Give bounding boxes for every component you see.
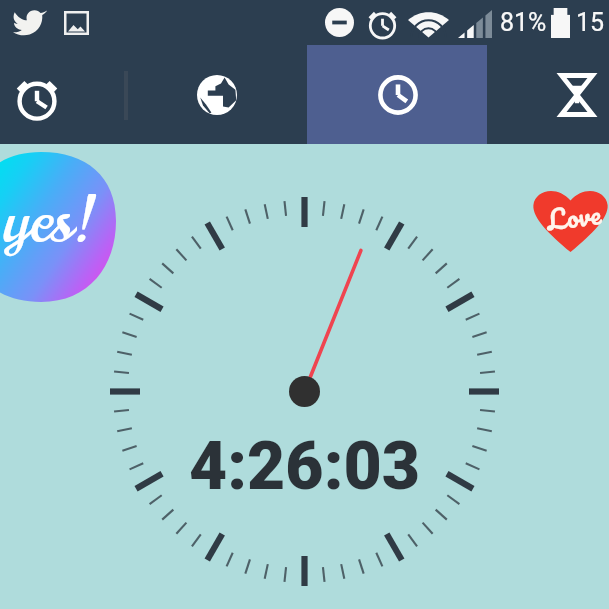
button[interactable]: Timer	[487, 45, 609, 144]
button[interactable]: World clock	[127, 45, 307, 144]
staticText: Love	[544, 190, 603, 243]
staticText: yes!	[4, 177, 92, 266]
button[interactable]: Start or stop the stopwatch	[110, 197, 499, 586]
staticText: 15	[576, 8, 605, 37]
button[interactable]: Alarm	[0, 45, 127, 144]
staticText: 81%	[500, 8, 547, 37]
staticText: 4:26:03	[0, 428, 609, 505]
button[interactable]: Stopwatch	[308, 45, 488, 144]
